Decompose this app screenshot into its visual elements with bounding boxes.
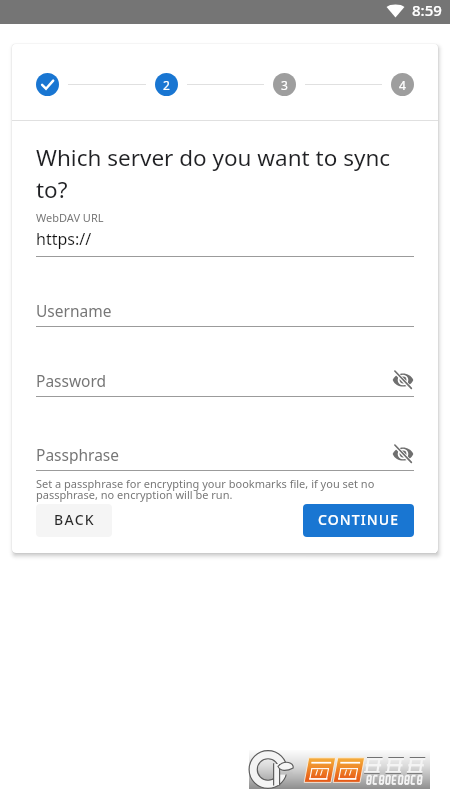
- staticText: Username: [36, 300, 112, 320]
- button[interactable]: Step 4: [391, 73, 414, 96]
- staticText: 2: [163, 77, 170, 93]
- staticText: Which server do you want to sync to?: [36, 142, 414, 205]
- staticText: WebDAV URL: [36, 210, 104, 225]
- button[interactable]: BACK: [36, 504, 112, 537]
- button[interactable]: Step 2: [155, 73, 178, 96]
- button[interactable]: Username: [36, 300, 414, 327]
- button[interactable]: Password: [36, 370, 414, 397]
- button[interactable]: Step 3: [273, 73, 296, 96]
- staticText: Password: [36, 370, 107, 390]
- button[interactable]: Show Password: [392, 370, 414, 390]
- staticText: 4: [399, 77, 406, 93]
- button[interactable]: Show Passphrase: [392, 444, 414, 464]
- button[interactable]: Passphrase: [36, 444, 414, 471]
- staticText: 8:59: [412, 0, 442, 20]
- staticText: https://: [36, 228, 92, 250]
- staticText: Set a passphrase for encrypting your boo…: [36, 476, 414, 503]
- button[interactable]: Step 1: [36, 73, 59, 96]
- staticText: BACK: [54, 510, 95, 529]
- staticText: Passphrase: [36, 444, 119, 464]
- staticText: CONTINUE: [318, 510, 400, 529]
- staticText: 3: [281, 77, 288, 93]
- button[interactable]: WebDAV URL: [36, 210, 414, 257]
- button[interactable]: CONTINUE: [303, 504, 414, 537]
